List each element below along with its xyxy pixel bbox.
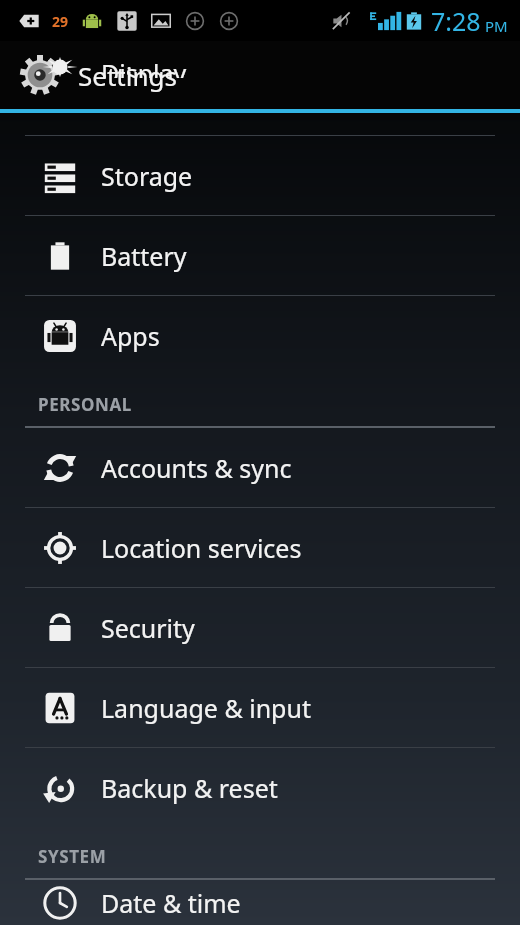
staticText: Accounts & sync: [101, 451, 292, 485]
button[interactable]: Date & time: [0, 880, 520, 925]
staticText: Display: [101, 56, 187, 78]
staticText: Security: [101, 611, 195, 645]
staticText: Language & input: [101, 691, 311, 725]
button[interactable]: Language & input: [0, 668, 520, 747]
button[interactable]: Apps: [0, 296, 520, 375]
button[interactable]: Location services: [0, 508, 520, 587]
staticText: SYSTEM: [38, 845, 107, 868]
button[interactable]: Battery: [0, 216, 520, 295]
staticText: Battery: [101, 239, 187, 273]
staticText: Storage: [101, 159, 193, 193]
staticText: 7:28: [431, 4, 481, 38]
staticText: Settings: [78, 58, 177, 93]
staticText: Date & time: [101, 886, 241, 920]
button[interactable]: Storage: [0, 136, 520, 215]
staticText: PERSONAL: [38, 393, 132, 416]
staticText: 29: [52, 12, 69, 31]
other: Settings: [18, 53, 62, 97]
button[interactable]: Security: [0, 588, 520, 667]
button[interactable]: Backup & reset: [0, 748, 520, 827]
button[interactable]: Accounts & sync: [0, 428, 520, 507]
staticText: Apps: [101, 319, 160, 353]
staticText: Location services: [101, 531, 302, 565]
staticText: Backup & reset: [101, 771, 278, 805]
staticText: PM: [485, 16, 508, 36]
